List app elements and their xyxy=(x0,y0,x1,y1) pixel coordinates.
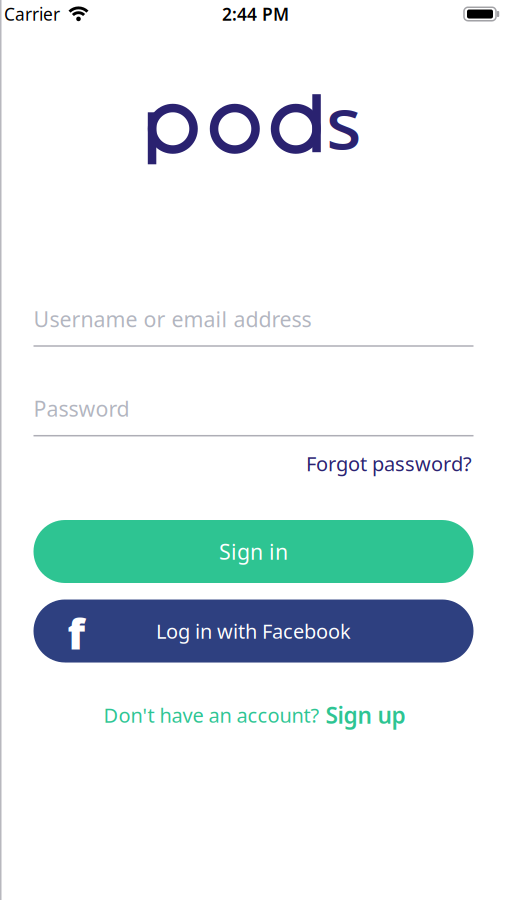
button[interactable]: Forgot password? xyxy=(35,450,472,477)
staticText: Username or email address xyxy=(33,305,311,333)
button[interactable]: Don't have an account? xyxy=(103,700,405,730)
staticText: Log in with Facebook xyxy=(156,618,351,644)
staticText: Carrier xyxy=(4,2,60,25)
staticText: Don't have an account? xyxy=(103,702,319,728)
staticText: f xyxy=(67,605,85,661)
staticText: Password xyxy=(33,394,129,423)
button[interactable]: Password xyxy=(33,394,473,423)
staticText: Sign up xyxy=(325,700,405,730)
staticText: s xyxy=(326,72,362,170)
button[interactable]: Log in with Facebook xyxy=(33,599,473,662)
button[interactable]: Username or email address xyxy=(33,305,473,333)
button[interactable]: Sign in xyxy=(33,520,473,583)
staticText: 2:44 PM xyxy=(222,2,289,25)
staticText: Sign in xyxy=(219,537,288,566)
staticText: Forgot password? xyxy=(306,450,472,477)
